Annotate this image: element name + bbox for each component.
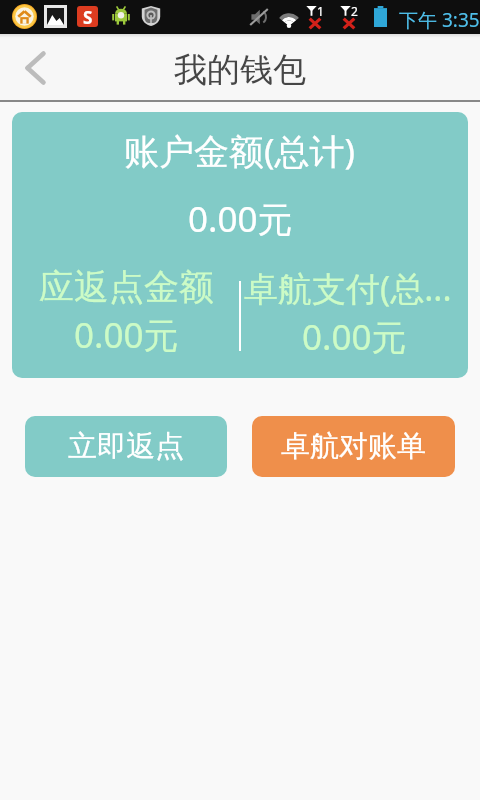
staticText: 卓航对账单 [281, 428, 426, 465]
staticText: 卓航支付(总... [244, 265, 452, 311]
staticText: 账户金额(总计) [124, 127, 356, 175]
button[interactable]: Back [0, 34, 62, 102]
button[interactable]: 立即返点 [25, 416, 227, 477]
staticText: 应返点金额 [39, 265, 214, 309]
staticText: 立即返点 [68, 428, 184, 465]
button[interactable]: 卓航对账单 [252, 416, 455, 477]
staticText: 下午 3:35 [399, 7, 480, 33]
staticText: 0.00元 [74, 311, 179, 359]
staticText: 2 [351, 3, 358, 19]
staticText: S [83, 6, 93, 27]
staticText: 0.00元 [302, 313, 407, 361]
staticText: 1 [317, 3, 324, 19]
staticText: 我的钱包 [174, 49, 306, 91]
staticText: 0.00元 [188, 195, 293, 243]
